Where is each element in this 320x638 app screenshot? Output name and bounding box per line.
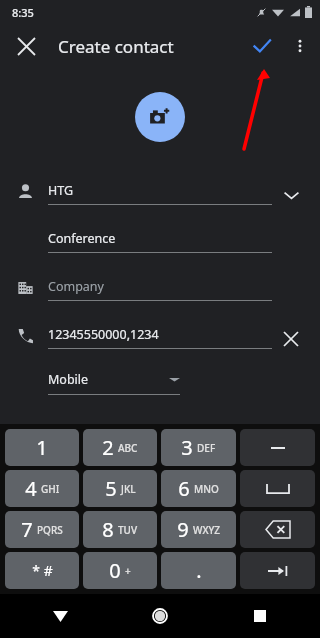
staticText: 2: [102, 434, 114, 461]
button[interactable]: Close: [8, 28, 44, 64]
button[interactable]: 4: [5, 470, 79, 507]
staticText: 1: [36, 434, 48, 461]
staticText: GHI: [41, 482, 60, 496]
staticText: 4: [25, 475, 37, 502]
staticText: 8:35: [12, 5, 34, 20]
button[interactable]: HTG: [0, 173, 320, 221]
button[interactable]: Save: [242, 26, 282, 66]
button[interactable]: Next field: [240, 552, 315, 589]
button[interactable]: 12345550000,1234: [0, 317, 320, 365]
button[interactable]: 2: [83, 429, 157, 466]
staticText: .: [196, 557, 202, 584]
button[interactable]: Mobile: [48, 371, 180, 388]
button[interactable]: Recent apps: [240, 596, 280, 636]
button[interactable]: Conference: [0, 221, 320, 269]
button[interactable]: 9: [161, 511, 236, 548]
button[interactable]: Dash: [240, 429, 315, 466]
staticText: 8: [102, 516, 114, 543]
button[interactable]: Backspace: [240, 511, 315, 548]
staticText: 7: [21, 516, 33, 543]
button[interactable]: Hide keyboard: [40, 596, 80, 636]
staticText: * #: [32, 561, 53, 580]
button[interactable]: 8: [83, 511, 157, 548]
button[interactable]: Add photo: [135, 92, 185, 142]
button[interactable]: * #: [5, 552, 79, 589]
button[interactable]: Expand name fields: [278, 182, 304, 208]
staticText: 12345550000,1234: [48, 326, 159, 343]
staticText: Company: [48, 278, 104, 295]
button[interactable]: 5: [83, 470, 157, 507]
staticText: 5: [105, 475, 117, 502]
staticText: Mobile: [48, 371, 89, 388]
button[interactable]: 1: [5, 429, 79, 466]
staticText: DEF: [197, 441, 216, 455]
staticText: ABC: [118, 441, 138, 455]
staticText: +: [125, 564, 131, 578]
staticText: 9: [177, 516, 189, 543]
staticText: 3: [181, 434, 193, 461]
staticText: 0: [109, 557, 121, 584]
button[interactable]: 6: [161, 470, 236, 507]
staticText: Conference: [48, 230, 116, 247]
button[interactable]: Home: [140, 596, 180, 636]
staticText: Create contact: [58, 35, 174, 58]
staticText: TUV: [118, 523, 138, 537]
staticText: 6: [178, 475, 190, 502]
button[interactable]: Space: [240, 470, 315, 507]
staticText: HTG: [48, 182, 74, 199]
button[interactable]: .: [161, 552, 236, 589]
button[interactable]: Company: [0, 269, 320, 317]
staticText: MNO: [194, 482, 219, 496]
button[interactable]: More options: [282, 28, 318, 64]
button[interactable]: 7: [5, 511, 79, 548]
staticText: JKL: [121, 482, 136, 496]
button[interactable]: 0: [83, 552, 157, 589]
staticText: WXYZ: [193, 523, 221, 537]
staticText: PQRS: [37, 523, 63, 537]
button[interactable]: Clear phone number: [278, 326, 304, 352]
button[interactable]: 3: [161, 429, 236, 466]
